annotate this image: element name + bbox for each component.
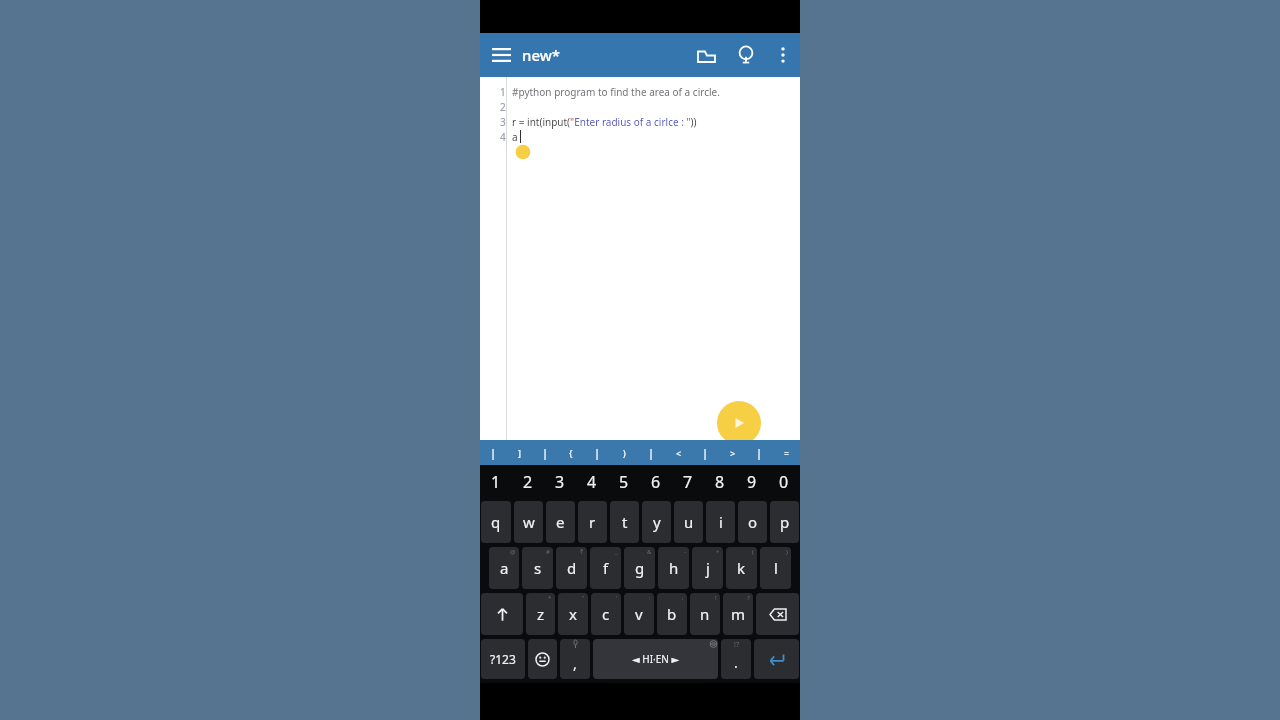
staticText: i xyxy=(719,512,723,532)
button[interactable]: Comma, voice input xyxy=(560,639,590,679)
button[interactable]: { xyxy=(558,440,584,465)
staticText: , xyxy=(573,654,577,673)
staticText: n xyxy=(700,604,710,624)
button[interactable]: 2 xyxy=(512,465,544,499)
staticText: 5 xyxy=(619,471,629,493)
button[interactable]: t xyxy=(610,501,639,543)
button[interactable]: + xyxy=(692,547,723,589)
button[interactable]: < xyxy=(665,440,692,465)
button[interactable]: Period xyxy=(721,639,751,679)
button[interactable]: 4 xyxy=(576,465,608,499)
staticText: 4 xyxy=(587,471,597,493)
staticText: @ xyxy=(510,548,516,556)
staticText: g xyxy=(635,558,645,578)
staticText: j xyxy=(706,558,710,578)
button[interactable]: Emoji xyxy=(528,639,557,679)
button[interactable]: _ xyxy=(590,547,621,589)
button[interactable]: # xyxy=(522,547,553,589)
button[interactable]: ] xyxy=(506,440,532,465)
button[interactable]: & xyxy=(624,547,655,589)
staticText: h xyxy=(669,558,679,578)
staticText: a xyxy=(500,558,509,578)
button[interactable]: u xyxy=(674,501,703,543)
staticText: 3 xyxy=(500,115,506,129)
button[interactable]: ? xyxy=(723,593,753,635)
staticText: | xyxy=(702,445,709,460)
staticText: 9 xyxy=(747,471,757,493)
button[interactable]: ₹ xyxy=(556,547,587,589)
button[interactable]: ! xyxy=(690,593,720,635)
staticText: u xyxy=(684,512,694,532)
button[interactable]: e xyxy=(546,501,575,543)
staticText: p xyxy=(780,512,790,532)
button[interactable]: Run program xyxy=(717,401,761,445)
staticText: !? xyxy=(734,640,739,650)
button[interactable]: 8 xyxy=(704,465,736,499)
button[interactable]: : xyxy=(624,593,654,635)
button[interactable]: @ xyxy=(489,547,519,589)
staticText: x xyxy=(569,604,577,624)
button[interactable]: More options xyxy=(766,33,800,77)
button[interactable]: 3 xyxy=(544,465,576,499)
button[interactable]: Shift xyxy=(481,593,523,635)
staticText: 8 xyxy=(715,471,725,493)
button[interactable]: ( xyxy=(726,547,757,589)
button[interactable]: 1 xyxy=(480,465,512,499)
staticText: 2 xyxy=(523,471,533,493)
staticText: | xyxy=(756,445,763,460)
staticText: y xyxy=(653,512,661,532)
button[interactable]: 6 xyxy=(640,465,672,499)
button[interactable]: Open file xyxy=(686,33,726,77)
button[interactable]: | xyxy=(480,440,506,465)
staticText: & xyxy=(647,548,652,556)
button[interactable]: ; xyxy=(657,593,687,635)
button[interactable]: | xyxy=(584,440,611,465)
staticText: 1 xyxy=(500,85,506,99)
button[interactable]: Hints xyxy=(726,33,766,77)
button[interactable]: y xyxy=(642,501,671,543)
button[interactable]: > xyxy=(719,440,746,465)
button[interactable]: p xyxy=(770,501,799,543)
button[interactable]: | xyxy=(532,440,558,465)
button[interactable]: w xyxy=(514,501,543,543)
staticText: 4 xyxy=(500,130,506,144)
button[interactable]: | xyxy=(638,440,665,465)
staticText: = xyxy=(784,447,790,459)
staticText: q xyxy=(491,512,501,532)
button[interactable]: * xyxy=(526,593,555,635)
button[interactable]: Backspace xyxy=(756,593,799,635)
button[interactable]: " xyxy=(558,593,588,635)
staticText: : xyxy=(649,594,651,602)
button[interactable]: 5 xyxy=(608,465,640,499)
staticText: # xyxy=(546,548,550,556)
button[interactable]: ) xyxy=(611,440,638,465)
button[interactable]: = xyxy=(773,440,800,465)
button[interactable]: o xyxy=(738,501,767,543)
button[interactable]: 9 xyxy=(736,465,768,499)
button[interactable]: i xyxy=(706,501,735,543)
staticText: e xyxy=(556,512,565,532)
button[interactable]: | xyxy=(692,440,719,465)
button[interactable]: ' xyxy=(591,593,621,635)
button[interactable]: | xyxy=(746,440,773,465)
staticText: . xyxy=(734,653,738,672)
button[interactable]: - xyxy=(658,547,689,589)
button[interactable]: Enter xyxy=(754,639,799,679)
button[interactable]: q xyxy=(481,501,511,543)
staticText: * xyxy=(548,594,552,602)
staticText: | xyxy=(490,445,497,460)
staticText: f xyxy=(603,558,609,578)
staticText: d xyxy=(567,558,577,578)
staticText: - xyxy=(684,548,686,556)
button[interactable]: ?123 xyxy=(481,639,525,679)
staticText: | xyxy=(542,445,549,460)
button[interactable]: Open navigation menu xyxy=(480,33,522,77)
button[interactable]: 0 xyxy=(768,465,800,499)
button[interactable]: Space, switch language xyxy=(593,639,718,679)
staticText: > xyxy=(730,447,736,459)
staticText: k xyxy=(737,558,746,578)
button[interactable]: 7 xyxy=(672,465,704,499)
staticText: ) xyxy=(786,548,788,556)
button[interactable]: ) xyxy=(760,547,791,589)
button[interactable]: r xyxy=(578,501,607,543)
